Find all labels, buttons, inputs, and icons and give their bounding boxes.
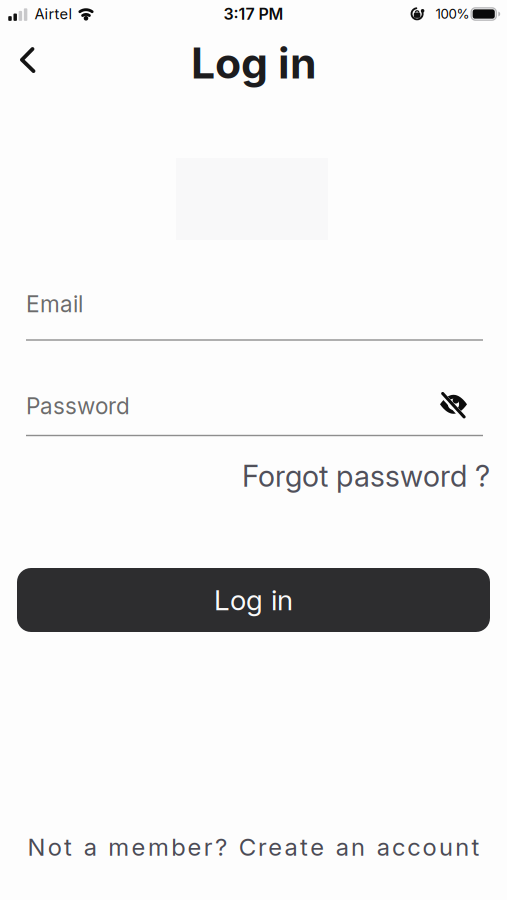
staticText: 3:17 PM <box>223 5 283 23</box>
staticText: Log in <box>191 38 317 88</box>
staticText: Password <box>26 393 130 419</box>
staticText: Forgot password ? <box>242 459 490 493</box>
staticText: Airtel <box>34 5 72 23</box>
staticText: Email <box>26 291 83 317</box>
button[interactable]: Log in <box>17 568 490 632</box>
button[interactable]: Show password <box>439 390 467 418</box>
button[interactable]: Forgot password ? <box>242 459 490 493</box>
staticText: Log in <box>214 583 293 616</box>
staticText: Not a member? Create an account <box>27 833 479 861</box>
button[interactable]: Back <box>20 44 36 75</box>
button[interactable]: Not a member? Create an account <box>0 833 507 861</box>
staticText: 100% <box>435 6 469 22</box>
